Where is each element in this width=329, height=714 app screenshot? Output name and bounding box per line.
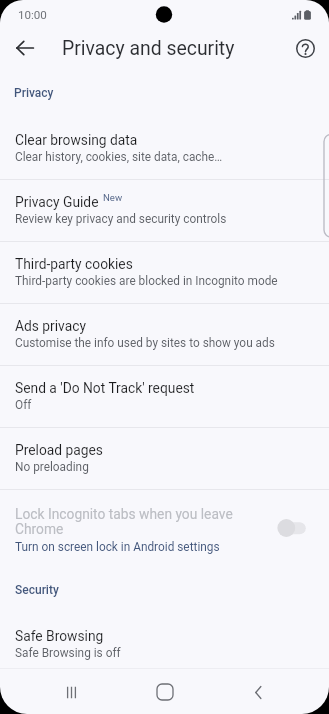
staticText: Privacy and security (62, 37, 235, 60)
staticText: Ads privacy (15, 318, 86, 334)
staticText: Privacy Guide (15, 194, 99, 210)
staticText: Safe Browsing (15, 628, 104, 644)
button[interactable]: Lock Incognito tabs toggle (275, 515, 309, 541)
staticText: Turn on screen lock in Android settings (15, 540, 220, 554)
button[interactable]: Safe Browsing (0, 613, 329, 675)
staticText: 10:00 (18, 8, 47, 22)
staticText: Preload pages (15, 442, 103, 458)
staticText: Third-party cookies are blocked in Incog… (15, 274, 278, 288)
staticText: Safe Browsing is off (15, 646, 121, 660)
staticText: Clear browsing data (15, 132, 138, 148)
staticText: Customise the info used by sites to show… (15, 336, 275, 350)
staticText: New (103, 192, 123, 203)
staticText: Clear history, cookies, site data, cache… (15, 150, 223, 164)
staticText: Lock Incognito tabs when you leave Chrom… (15, 506, 271, 538)
staticText: Privacy (14, 86, 54, 100)
staticText: No preloading (15, 460, 89, 474)
button[interactable]: Privacy Guide (0, 179, 329, 241)
button[interactable]: Help (288, 31, 322, 65)
button[interactable]: Preload pages (0, 427, 329, 489)
staticText: Send a 'Do Not Track' request (15, 380, 195, 396)
staticText: Off (15, 398, 32, 412)
button[interactable]: Clear browsing data (0, 117, 329, 179)
staticText: Third-party cookies (15, 256, 133, 272)
button[interactable]: Ads privacy (0, 303, 329, 365)
staticText: Review key privacy and security controls (15, 212, 227, 226)
button[interactable]: Third-party cookies (0, 241, 329, 303)
button[interactable]: Back (7, 30, 43, 66)
button[interactable]: Send a 'Do Not Track' request (0, 365, 329, 427)
button[interactable]: Home (143, 670, 187, 714)
button[interactable]: Recents (49, 670, 93, 714)
button[interactable]: Back (236, 670, 280, 714)
staticText: Security (15, 583, 59, 597)
button[interactable]: Lock Incognito tabs when you leave Chrom… (0, 489, 329, 557)
